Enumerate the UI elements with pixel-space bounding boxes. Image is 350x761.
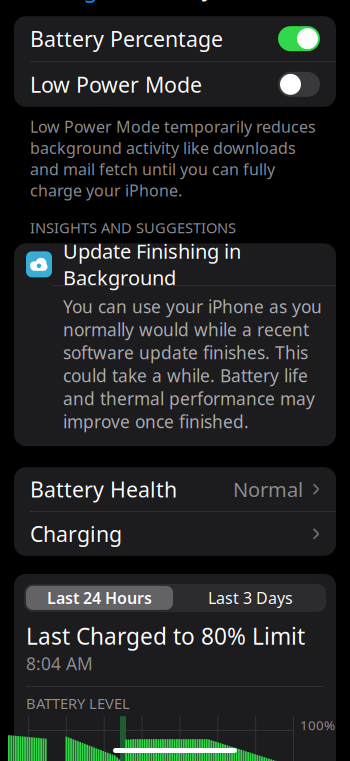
staticText: Battery Percentage [30, 24, 223, 53]
staticText: Low Power Mode [30, 70, 202, 98]
staticText: You can use your iPhone as you normally … [63, 295, 322, 433]
button[interactable]: Last 3 Days [175, 584, 326, 612]
button[interactable]: Battery Health [14, 467, 336, 511]
staticText: Charging [30, 520, 122, 548]
staticText: Last 3 Days [208, 587, 293, 608]
staticText: Battery [136, 0, 213, 2]
staticText: 100% [300, 716, 335, 734]
staticText: Low Power Mode temporarily reduces backg… [30, 116, 316, 201]
button[interactable]: Charging [14, 512, 336, 556]
staticText: INSIGHTS AND SUGGESTIONS [30, 218, 236, 237]
button[interactable]: Low Power Mode [14, 62, 336, 107]
staticText: Last 24 Hours [47, 587, 152, 608]
staticText: Last Charged to 80% Limit [26, 621, 305, 651]
staticText: Settings [22, 0, 108, 3]
staticText: Battery Health [30, 475, 177, 503]
staticText: Update Finishing in Background [63, 238, 241, 291]
button[interactable]: Last 24 Hours [26, 586, 173, 610]
button[interactable]: Settings [0, 0, 108, 11]
staticText: BATTERY LEVEL [26, 694, 130, 713]
staticText: Normal [233, 476, 303, 502]
button[interactable]: Battery Percentage [14, 16, 336, 61]
staticText: 8:04 AM [26, 652, 93, 675]
